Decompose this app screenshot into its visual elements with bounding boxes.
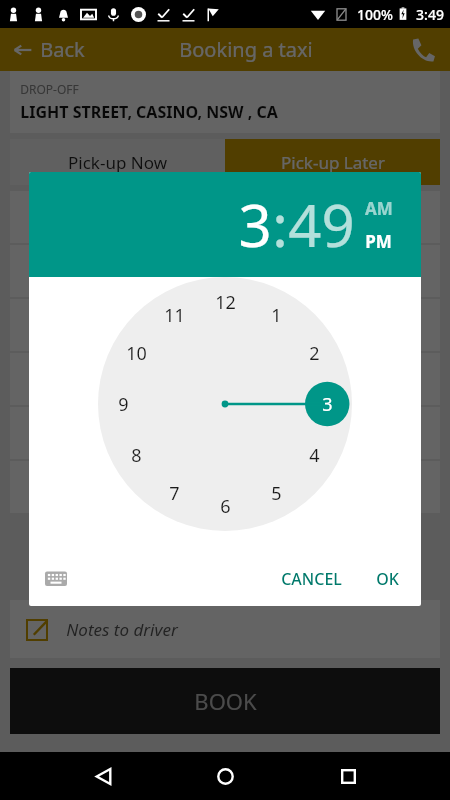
staticText: 5 <box>271 481 282 506</box>
button[interactable]: 6 <box>208 489 242 523</box>
button[interactable]: Pick-up Later <box>225 139 440 185</box>
staticText: OK <box>376 568 399 590</box>
button[interactable]: 3 <box>238 185 272 264</box>
button[interactable]: 9 <box>106 387 140 421</box>
staticText: Notes to driver <box>66 618 178 641</box>
button[interactable]: CANCEL <box>273 562 350 596</box>
button[interactable]: Pick-up Now <box>10 139 225 185</box>
staticText: 11 <box>164 303 185 328</box>
button[interactable]: 10 <box>119 336 153 370</box>
staticText: PM <box>365 230 392 253</box>
staticText: 3 <box>322 392 333 417</box>
staticText: 9 <box>118 392 129 417</box>
button[interactable]: Back <box>12 36 85 63</box>
staticText: Pick-up Now <box>68 151 167 174</box>
staticText: 10 <box>126 341 147 366</box>
button[interactable]: 4 <box>297 438 331 472</box>
staticText: 4 <box>309 443 320 468</box>
staticText: CANCEL <box>281 568 342 590</box>
button[interactable]: Back <box>83 756 123 796</box>
staticText: 100% <box>357 5 393 24</box>
button[interactable]: 1 <box>259 298 293 332</box>
button[interactable]: 11 <box>157 298 191 332</box>
button[interactable]: Switch to keyboard input <box>43 566 69 592</box>
staticText: 7 <box>169 481 180 506</box>
staticText: LIGHT STREET, CASINO, NSW , CA <box>20 101 278 123</box>
button[interactable]: 5 <box>259 476 293 510</box>
button[interactable]: Notes to driver <box>10 600 440 658</box>
staticText: Pick-up Later <box>281 151 385 174</box>
staticText: AM <box>365 197 393 220</box>
staticText: Booking a taxi <box>179 36 313 63</box>
staticText: 8 <box>131 443 142 468</box>
staticText: 12 <box>215 290 236 315</box>
button[interactable]: OK <box>368 562 407 596</box>
staticText: 49 <box>288 185 355 264</box>
button[interactable]: 8 <box>119 438 153 472</box>
button[interactable]: Recents <box>328 756 368 796</box>
button[interactable]: 49 <box>288 185 355 264</box>
button[interactable]: 7 <box>157 476 191 510</box>
staticText: 3:49 <box>416 5 444 24</box>
staticText: : <box>272 185 288 264</box>
staticText: 2 <box>309 341 320 366</box>
staticText: 1 <box>271 303 282 328</box>
button[interactable]: Call <box>408 35 438 65</box>
staticText: 6 <box>220 494 231 519</box>
staticText: DROP-OFF <box>20 81 79 97</box>
staticText: 3 <box>238 185 272 264</box>
button[interactable]: 2 <box>297 336 331 370</box>
button[interactable]: Home <box>205 756 245 796</box>
staticText: Back <box>40 36 85 63</box>
button[interactable]: BOOK <box>10 668 440 734</box>
button[interactable]: 3 <box>310 387 344 421</box>
staticText: BOOK <box>194 686 257 716</box>
button[interactable]: PM <box>365 230 392 253</box>
button[interactable]: AM <box>365 197 393 220</box>
button[interactable]: 12 <box>208 285 242 319</box>
